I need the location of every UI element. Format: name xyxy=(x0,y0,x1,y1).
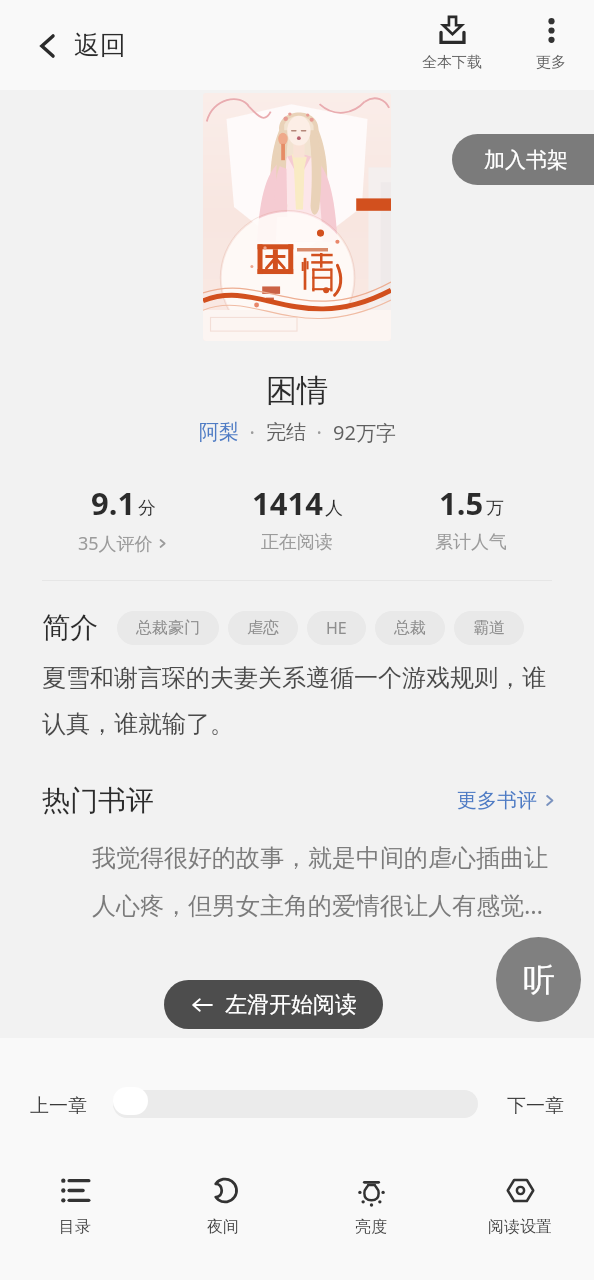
staticText: 正在阅读 xyxy=(261,531,333,554)
staticText: 累计人气 xyxy=(435,531,507,554)
button[interactable]: 返回 xyxy=(34,23,134,68)
staticText: 返回 xyxy=(74,29,126,62)
staticText: 左滑开始阅读 xyxy=(225,991,357,1019)
button[interactable]: 全本下载 xyxy=(414,11,490,76)
button[interactable]: 听书 xyxy=(496,937,581,1022)
staticText: 加入书架 xyxy=(484,147,568,173)
staticText: 上一章 xyxy=(30,1094,87,1114)
button[interactable]: 章节进度 xyxy=(113,1087,148,1115)
staticText: 完结 xyxy=(266,420,306,445)
staticText: 热门书评 xyxy=(42,783,154,818)
button[interactable]: 左滑开始阅读 xyxy=(164,980,383,1029)
button[interactable]: 夜间 xyxy=(169,1168,277,1245)
staticText: 9.1 xyxy=(91,482,136,524)
staticText: 下一章 xyxy=(507,1094,564,1114)
staticText: 1.5 xyxy=(439,482,484,524)
button[interactable]: 更多书评 xyxy=(453,784,560,817)
staticText: 困情 xyxy=(266,371,328,410)
staticText: 霸道 xyxy=(473,618,505,638)
staticText: 简介 xyxy=(42,610,98,645)
button[interactable]: 加入书架 xyxy=(452,134,594,185)
staticText: 亮度 xyxy=(355,1217,387,1237)
staticText: 我觉得很好的故事，就是中间的虐心插曲让人心疼，但男女主角的爱情很让人有感觉… xyxy=(92,843,552,921)
button[interactable]: 虐恋 xyxy=(228,611,298,645)
button[interactable]: 阅读设置 xyxy=(466,1168,574,1245)
staticText: 阿梨 xyxy=(199,420,239,445)
staticText: 听 xyxy=(523,960,555,1000)
button[interactable]: 上一章 xyxy=(26,1090,91,1118)
staticText: 目录 xyxy=(59,1217,91,1237)
staticText: 35人评价 xyxy=(78,531,153,556)
button[interactable]: 目录 xyxy=(21,1168,129,1245)
staticText: 夜间 xyxy=(207,1217,239,1237)
button[interactable]: 总裁豪门 xyxy=(117,611,219,645)
staticText: 92万字 xyxy=(333,419,396,446)
staticText: 1414 xyxy=(252,482,323,524)
staticText: 全本下载 xyxy=(422,53,482,72)
staticText: · xyxy=(306,419,333,446)
button[interactable]: 下一章 xyxy=(503,1090,568,1118)
button[interactable]: 亮度 xyxy=(317,1168,425,1245)
staticText: 分 xyxy=(138,497,156,520)
staticText: 人 xyxy=(325,497,343,520)
staticText: 更多书评 xyxy=(457,788,537,813)
staticText: 虐恋 xyxy=(247,618,279,638)
staticText: HE xyxy=(326,617,347,639)
staticText: 夏雪和谢言琛的夫妻关系遵循一个游戏规则，谁认真，谁就输了。 xyxy=(42,663,556,739)
button[interactable]: 更多 xyxy=(519,11,583,76)
staticText: 总裁 xyxy=(394,618,426,638)
button[interactable]: 霸道 xyxy=(454,611,524,645)
button[interactable]: 阿梨 xyxy=(199,420,239,445)
staticText: 更多 xyxy=(536,53,566,72)
staticText: 万 xyxy=(486,497,504,520)
staticText: 阅读设置 xyxy=(488,1217,552,1237)
staticText: · xyxy=(239,419,266,446)
button[interactable]: 总裁 xyxy=(375,611,445,645)
button[interactable]: 35人评价 xyxy=(78,531,168,556)
staticText: 总裁豪门 xyxy=(136,618,200,638)
button[interactable]: HE xyxy=(307,611,366,645)
